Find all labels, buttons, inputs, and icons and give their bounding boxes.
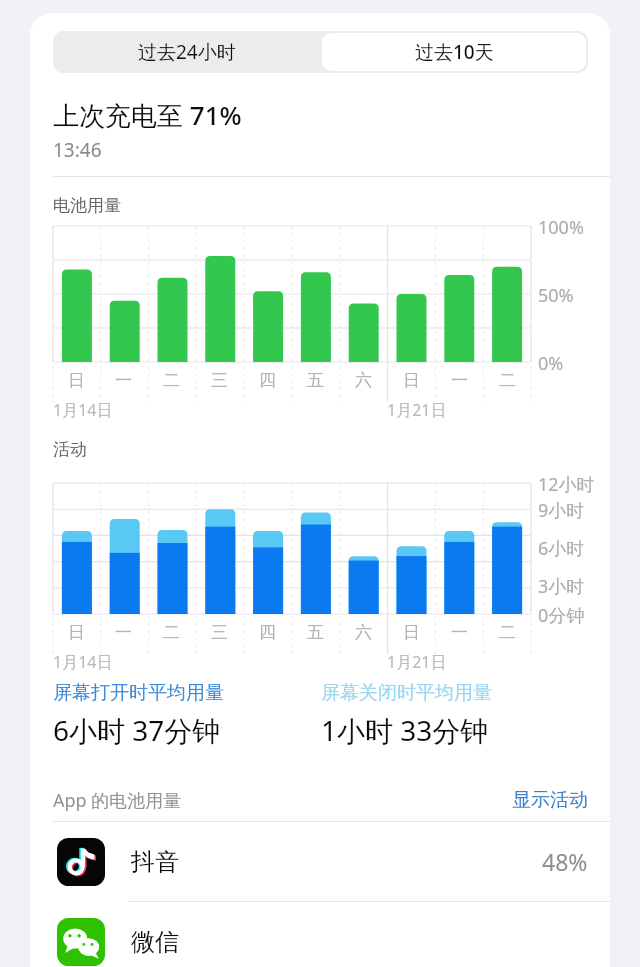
staticText: App 的电池用量 xyxy=(53,788,182,813)
staticText: 六 xyxy=(355,370,372,391)
staticText: 微信 xyxy=(131,927,179,957)
staticText: 1月21日 xyxy=(387,651,447,673)
staticText: 三 xyxy=(211,370,228,391)
staticText: 6小时 37分钟 xyxy=(53,711,221,749)
staticText: 抖音 xyxy=(131,847,179,877)
staticText: 6小时 xyxy=(538,536,585,561)
staticText: 屏幕关闭时平均用量 xyxy=(321,681,492,705)
staticText: 12小时 xyxy=(538,472,595,497)
staticText: 3小时 xyxy=(538,574,585,599)
staticText: 二 xyxy=(163,370,180,391)
staticText: 0分钟 xyxy=(538,603,585,628)
staticText: 显示活动 xyxy=(512,788,588,812)
staticText: 上次充电至 71% xyxy=(53,97,242,133)
staticText: 100% xyxy=(538,215,584,240)
other: 抖音 xyxy=(57,838,105,886)
staticText: 过去10天 xyxy=(415,39,494,65)
button[interactable]: 抖音 xyxy=(30,822,610,901)
staticText: 日 xyxy=(68,622,85,643)
staticText: 活动 xyxy=(53,439,87,460)
button[interactable]: 微信 xyxy=(30,902,610,967)
button[interactable]: 显示活动 xyxy=(512,788,588,812)
staticText: 电池用量 xyxy=(53,195,121,216)
staticText: 一 xyxy=(451,370,468,391)
staticText: 1月14日 xyxy=(53,651,113,673)
staticText: 一 xyxy=(115,370,132,391)
staticText: 屏幕打开时平均用量 xyxy=(53,681,224,705)
staticText: 9小时 xyxy=(538,498,585,523)
staticText: 六 xyxy=(355,622,372,643)
staticText: 日 xyxy=(68,370,85,391)
other: 微信 xyxy=(57,918,105,966)
staticText: 0% xyxy=(538,351,564,376)
staticText: 五 xyxy=(307,370,324,391)
staticText: 五 xyxy=(307,622,324,643)
button[interactable]: 过去24小时 xyxy=(53,31,320,73)
staticText: 日 xyxy=(403,370,420,391)
staticText: 一 xyxy=(115,622,132,643)
staticText: 1月21日 xyxy=(387,399,447,421)
staticText: 1月14日 xyxy=(53,399,113,421)
staticText: 日 xyxy=(403,622,420,643)
staticText: 50% xyxy=(538,283,574,308)
staticText: 48% xyxy=(542,846,588,877)
staticText: 三 xyxy=(211,622,228,643)
staticText: 二 xyxy=(163,622,180,643)
staticText: 13:46 xyxy=(53,137,102,163)
button[interactable]: 过去10天 xyxy=(322,33,586,71)
staticText: 1小时 33分钟 xyxy=(321,711,489,749)
staticText: 四 xyxy=(259,370,276,391)
staticText: 二 xyxy=(499,622,516,643)
staticText: 一 xyxy=(451,622,468,643)
staticText: 二 xyxy=(499,370,516,391)
staticText: 过去24小时 xyxy=(138,39,236,65)
staticText: 四 xyxy=(259,622,276,643)
